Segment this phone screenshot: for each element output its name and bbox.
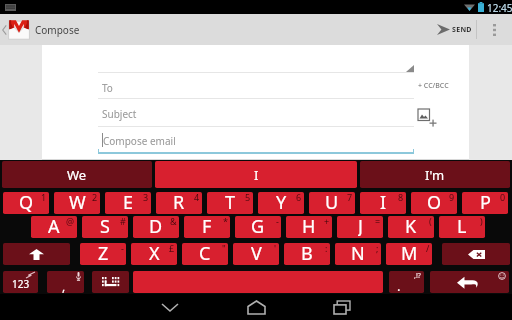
button[interactable]: + CC/BCC — [418, 81, 449, 91]
staticText: : — [325, 243, 328, 254]
button[interactable]: O — [411, 192, 457, 214]
staticText: T — [225, 192, 236, 212]
staticText: I'm — [425, 166, 445, 184]
staticText: X — [149, 243, 160, 263]
staticText: 12:45 — [487, 1, 512, 15]
staticText: 7 — [347, 192, 353, 203]
button[interactable]: C — [182, 243, 228, 265]
staticText: I — [254, 166, 259, 184]
button[interactable]: SEND — [428, 14, 476, 45]
button[interactable]: X — [131, 243, 177, 265]
staticText: . — [397, 277, 401, 293]
staticText: SEND — [452, 25, 472, 35]
staticText: E — [123, 192, 134, 212]
staticText: 6 — [296, 192, 302, 203]
button[interactable]: I'm — [360, 161, 510, 188]
staticText: P — [480, 192, 491, 212]
staticText: H — [302, 216, 316, 236]
staticText: 2 — [92, 192, 98, 203]
button[interactable]: A — [31, 216, 77, 238]
button[interactable]: Recents — [322, 294, 362, 320]
staticText: ' — [274, 243, 277, 254]
button[interactable]: We — [2, 161, 152, 188]
staticText: O — [427, 192, 442, 212]
button[interactable]: Hide keyboard — [150, 294, 190, 320]
staticText: " — [222, 243, 226, 254]
button[interactable]: Q — [3, 192, 49, 214]
staticText: - — [121, 243, 124, 254]
button[interactable]: Attach image — [416, 107, 436, 127]
staticText: Q — [19, 192, 34, 212]
button[interactable]: N — [335, 243, 381, 265]
staticText: 0 — [500, 192, 506, 203]
staticText: R — [173, 192, 185, 212]
staticText: K — [405, 216, 417, 236]
button[interactable]: . — [389, 271, 424, 293]
button[interactable]: H — [286, 216, 332, 238]
button[interactable]: D — [133, 216, 179, 238]
staticText: Compose — [35, 23, 80, 37]
staticText: C — [199, 243, 211, 263]
staticText: ,!? — [414, 271, 421, 281]
staticText: J — [358, 216, 363, 236]
button[interactable] — [133, 271, 383, 293]
staticText: V — [251, 243, 262, 263]
button[interactable]: To — [98, 73, 414, 98]
button[interactable]: V — [233, 243, 279, 265]
staticText: 123 — [12, 277, 30, 291]
staticText: 8 — [398, 192, 404, 203]
button[interactable]: K — [388, 216, 434, 238]
button[interactable] — [430, 271, 509, 293]
button[interactable]: M — [386, 243, 432, 265]
button[interactable] — [92, 271, 129, 293]
button[interactable]: Y — [258, 192, 304, 214]
staticText: F — [202, 216, 212, 236]
staticText: Z — [98, 243, 109, 263]
staticText: B — [301, 243, 313, 263]
button[interactable]: Home — [236, 294, 276, 320]
button[interactable]: 123 — [3, 271, 38, 293]
button[interactable]: J — [337, 216, 383, 238]
button[interactable]: I — [360, 192, 406, 214]
button[interactable]: Subject — [98, 99, 414, 126]
staticText: N — [351, 243, 365, 263]
button[interactable]: More options — [477, 14, 512, 45]
staticText: ; — [376, 243, 379, 254]
button[interactable]: P — [462, 192, 508, 214]
staticText: I — [380, 192, 387, 212]
button[interactable]: Z — [80, 243, 126, 265]
button[interactable] — [442, 243, 510, 265]
button[interactable]: W — [54, 192, 100, 214]
staticText: 5 — [245, 192, 251, 203]
staticText: D — [149, 216, 163, 236]
staticText: To — [102, 81, 113, 95]
staticText: A — [48, 216, 60, 236]
button[interactable]: I — [155, 161, 357, 188]
button[interactable]: T — [207, 192, 253, 214]
button[interactable] — [3, 243, 70, 265]
staticText: 9 — [449, 192, 455, 203]
staticText: - — [276, 216, 279, 227]
button[interactable]: Compose — [0, 14, 84, 45]
button[interactable]: , — [47, 271, 84, 293]
staticText: U — [325, 192, 339, 212]
button[interactable]: Compose email — [98, 127, 414, 152]
staticText: , — [62, 278, 66, 293]
staticText: + CC/BCC — [418, 81, 449, 91]
staticText: S — [100, 216, 110, 236]
staticText: Subject — [102, 107, 137, 121]
button[interactable]: G — [235, 216, 281, 238]
staticText: L — [457, 216, 467, 236]
button[interactable]: B — [284, 243, 330, 265]
staticText: W — [69, 192, 86, 212]
staticText: ) — [480, 216, 483, 227]
button[interactable]: F — [184, 216, 230, 238]
staticText: 4 — [194, 192, 200, 203]
button[interactable]: S — [82, 216, 128, 238]
button[interactable]: E — [105, 192, 151, 214]
button[interactable]: L — [439, 216, 485, 238]
button[interactable]: R — [156, 192, 202, 214]
staticText: We — [67, 166, 87, 184]
button[interactable]: U — [309, 192, 355, 214]
staticText: # — [120, 216, 126, 227]
